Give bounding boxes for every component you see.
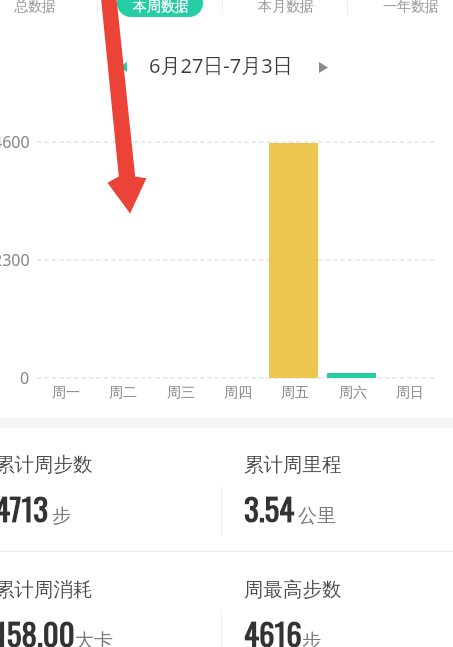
staticText: 累计周步数 [0,452,93,477]
staticText: 本周数据 [133,0,189,16]
button[interactable] [0,565,197,647]
button[interactable] [0,440,197,530]
staticText: 公里 [298,504,336,528]
staticText: 一年数据 [383,0,439,16]
staticText: 周六 [339,384,367,402]
button[interactable]: 总数据 [6,0,70,17]
staticText: 158.00 [0,610,75,647]
button[interactable]: 本月数据 [250,0,322,17]
staticText: 3.54 [244,485,295,531]
staticText: 周三 [167,384,195,402]
staticText: 周二 [109,384,137,402]
staticText: 2300 [0,249,30,271]
staticText: 4600 [0,131,30,153]
staticText: 4616 [244,610,302,647]
staticText: 周最高步数 [244,577,342,602]
staticText: 0 [20,367,30,389]
button[interactable]: 一年数据 [375,0,447,17]
staticText: 大卡 [75,629,113,647]
staticText: 周四 [224,384,252,402]
staticText: 本月数据 [258,0,314,16]
staticText: 周一 [52,384,80,402]
staticText: 累计周里程 [244,452,342,477]
staticText: 4713 [0,485,48,531]
staticText: 总数据 [14,0,56,16]
button[interactable]: Previous week [108,52,138,82]
button[interactable]: 本周数据 [117,0,203,17]
button[interactable]: Next week [308,52,338,82]
staticText: 步 [302,629,321,647]
staticText: 步 [52,504,71,528]
staticText: 累计周消耗 [0,577,93,602]
staticText: 6月27日-7月3日 [149,52,293,79]
staticText: 周五 [281,384,309,402]
staticText: 周日 [396,384,424,402]
button[interactable] [236,440,446,530]
button[interactable] [236,565,446,647]
